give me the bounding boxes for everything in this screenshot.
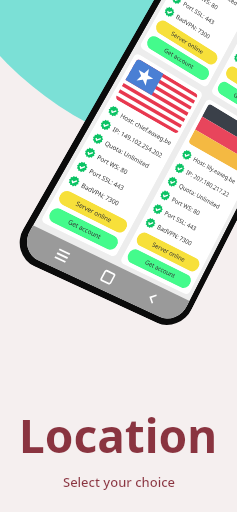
button[interactable]: Get account	[125, 247, 193, 290]
staticText: Location	[19, 404, 218, 467]
staticText: Quota: Unlimited	[103, 139, 151, 170]
staticText: IP: 207.180.217.22	[185, 168, 231, 199]
button[interactable]: Home	[89, 259, 126, 295]
staticText: Quota: Unlimited	[196, 0, 237, 8]
button[interactable]: Get account	[144, 33, 211, 83]
staticText: BadVPN: 7300	[79, 181, 121, 208]
staticText: Get account	[232, 91, 237, 114]
button[interactable]: Host: lily.eaxeg.be	[139, 0, 237, 88]
staticText: Host: lily.eaxeg.be	[192, 155, 237, 185]
button[interactable]: Server online	[224, 64, 237, 110]
button[interactable]: Back	[135, 281, 170, 316]
staticText: Port WS: 80	[189, 0, 220, 12]
staticText: Server online	[151, 240, 187, 264]
staticText: Server online	[170, 30, 205, 56]
staticText: BadVPN: 7300	[155, 223, 193, 248]
button[interactable]: Host: chief.eaxeg.be	[40, 52, 204, 258]
staticText: Server online	[74, 199, 114, 225]
staticText: Host: chief.eaxeg.be	[119, 112, 173, 147]
staticText: IP: 149.102.254.202	[111, 125, 164, 160]
button[interactable]: Host: lily.eaxeg.be	[119, 98, 237, 296]
staticText: Get account	[143, 258, 177, 280]
staticText: Port WS: 80	[95, 153, 130, 177]
staticText: Port SSL: 443	[87, 167, 126, 192]
button[interactable]: Server online	[56, 188, 130, 235]
staticText: BadVPN: 7300	[174, 13, 211, 41]
button[interactable]: Server online	[134, 230, 202, 274]
staticText: Get account	[163, 46, 195, 71]
staticText: Quota: Unlimited	[177, 182, 222, 211]
staticText: Port WS: 80	[170, 195, 202, 217]
staticText: Get account	[66, 218, 103, 241]
button[interactable]: Get account	[215, 79, 237, 125]
button[interactable]: Server online	[153, 18, 220, 67]
staticText: Port SSL: 443	[163, 209, 198, 233]
staticText: Select your choice	[63, 473, 175, 491]
button[interactable]: Host: jane.eaxeg.be	[210, 0, 237, 131]
button[interactable]: Get account	[46, 206, 121, 252]
staticText: Port SSL: 443	[182, 0, 216, 27]
button[interactable]: Recents	[42, 237, 81, 274]
